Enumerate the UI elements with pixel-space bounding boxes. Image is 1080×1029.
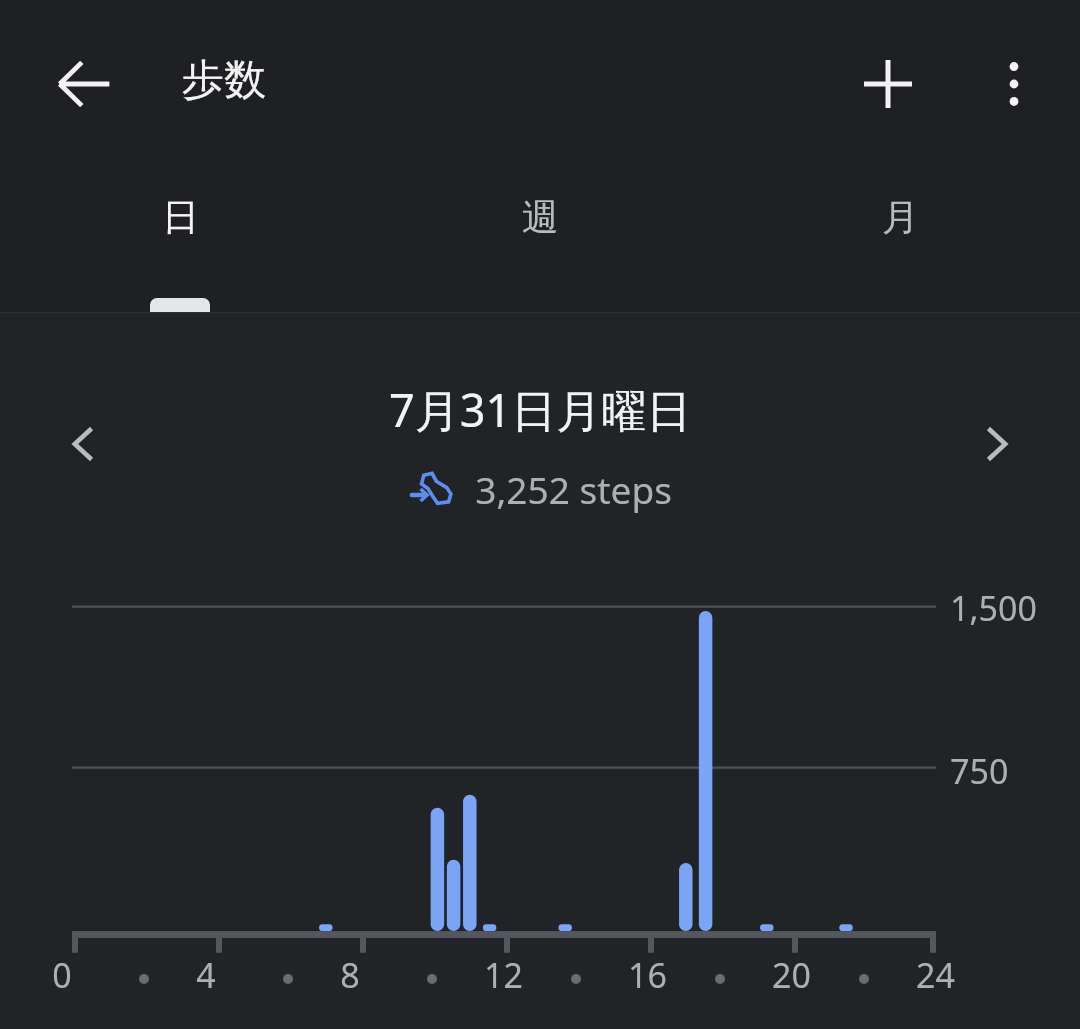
button[interactable]: 日 (0, 168, 360, 312)
button[interactable]: Previous day (36, 396, 132, 492)
staticText: 7月31日月曜日 (389, 379, 692, 440)
button[interactable]: Next day (948, 396, 1044, 492)
button[interactable]: 月 (720, 168, 1080, 312)
staticText: 750 (950, 748, 1009, 794)
staticText: 週 (522, 194, 559, 241)
button[interactable]: 週 (360, 168, 720, 312)
staticText: 月 (882, 194, 919, 241)
button[interactable]: More options (966, 36, 1062, 132)
staticText: 16 (628, 952, 667, 998)
staticText: 1,500 (950, 585, 1037, 631)
staticText: 歩数 (182, 54, 266, 107)
staticText: 24 (916, 952, 955, 998)
staticText: 8 (340, 952, 360, 998)
staticText: 0 (52, 952, 72, 998)
staticText: 20 (772, 952, 811, 998)
staticText: 12 (484, 952, 523, 998)
button[interactable]: Add (840, 36, 936, 132)
button[interactable]: Back (36, 36, 132, 132)
staticText: 4 (196, 952, 216, 998)
staticText: 3,252 steps (456, 464, 672, 514)
staticText: 日 (162, 194, 199, 241)
